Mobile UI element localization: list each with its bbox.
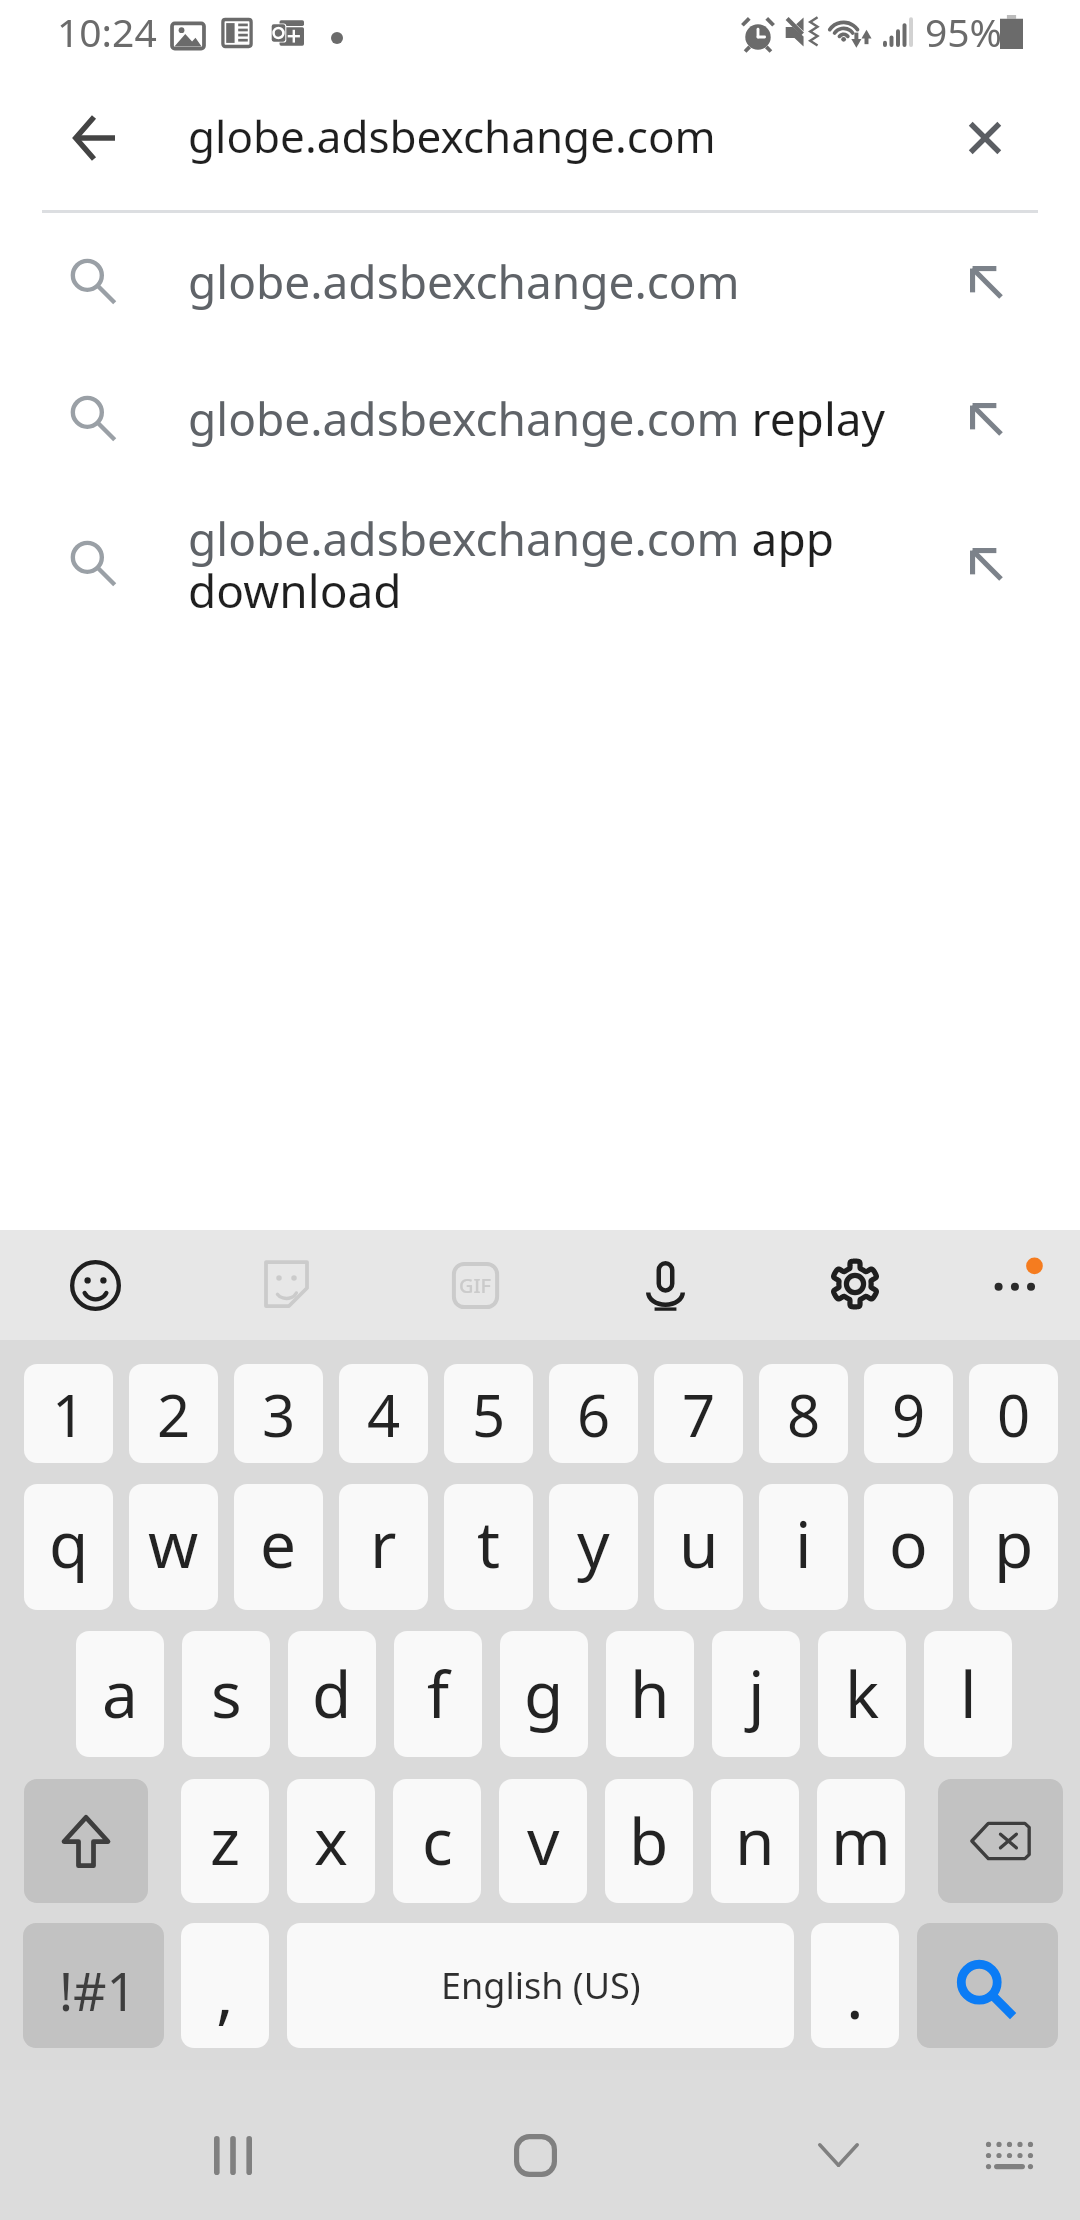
button[interactable]: r: [339, 1484, 428, 1610]
button[interactable]: Home: [480, 2090, 590, 2220]
button[interactable]: p: [969, 1484, 1058, 1610]
button[interactable]: 6: [549, 1364, 638, 1463]
staticText: d: [312, 1650, 352, 1737]
staticText: f: [427, 1650, 450, 1737]
button[interactable]: v: [499, 1779, 587, 1903]
button[interactable]: t: [444, 1484, 533, 1610]
button[interactable]: c: [393, 1779, 481, 1903]
staticText: 0: [997, 1375, 1031, 1454]
staticText: .: [846, 1948, 864, 2038]
button[interactable]: s: [182, 1631, 270, 1757]
staticText: y: [577, 1500, 610, 1587]
button[interactable]: 1: [24, 1364, 113, 1463]
button[interactable]: a: [76, 1631, 164, 1757]
button[interactable]: m: [817, 1779, 905, 1903]
button[interactable]: 2: [129, 1364, 218, 1463]
staticText: globe.adsbexchange.com: [188, 250, 914, 313]
button[interactable]: 5: [444, 1364, 533, 1463]
button[interactable]: Clear text: [938, 84, 1032, 192]
button[interactable]: Voice input: [621, 1241, 709, 1329]
button[interactable]: ,: [181, 1923, 269, 2048]
staticText: English (US): [441, 1961, 641, 2010]
staticText: c: [422, 1797, 453, 1884]
button[interactable]: u: [654, 1484, 743, 1610]
button[interactable]: n: [711, 1779, 799, 1903]
staticText: z: [210, 1797, 241, 1884]
button[interactable]: g: [500, 1631, 588, 1757]
staticText: b: [629, 1797, 669, 1884]
button[interactable]: 8: [759, 1364, 848, 1463]
staticText: l: [960, 1650, 977, 1737]
staticText: globe.adsbexchange.com app download: [188, 507, 914, 621]
staticText: q: [49, 1500, 89, 1587]
staticText: 7: [682, 1375, 716, 1454]
button[interactable]: 0: [969, 1364, 1058, 1463]
button[interactable]: f: [394, 1631, 482, 1757]
button[interactable]: 7: [654, 1364, 743, 1463]
button[interactable]: Stickers: [241, 1241, 329, 1329]
staticText: x: [314, 1797, 348, 1884]
staticText: !#1: [59, 1955, 137, 2026]
button[interactable]: k: [818, 1631, 906, 1757]
button[interactable]: w: [129, 1484, 218, 1610]
button[interactable]: More options: [970, 1241, 1058, 1329]
staticText: o: [889, 1500, 928, 1587]
button[interactable]: l: [924, 1631, 1012, 1757]
staticText: i: [795, 1500, 812, 1587]
button[interactable]: globe.adsbexchange.com replay: [0, 350, 1080, 487]
staticText: e: [260, 1500, 297, 1587]
button[interactable]: globe.adsbexchange.com app download: [0, 487, 1080, 640]
staticText: 9: [892, 1375, 926, 1454]
button[interactable]: !#1: [23, 1923, 164, 2048]
button[interactable]: x: [287, 1779, 375, 1903]
staticText: globe.adsbexchange.com replay: [188, 387, 914, 450]
staticText: k: [845, 1650, 880, 1737]
button[interactable]: z: [181, 1779, 269, 1903]
button[interactable]: 4: [339, 1364, 428, 1463]
button[interactable]: h: [606, 1631, 694, 1757]
staticText: t: [477, 1500, 501, 1587]
button[interactable]: b: [605, 1779, 693, 1903]
button[interactable]: y: [549, 1484, 638, 1610]
button[interactable]: .: [811, 1923, 899, 2048]
button[interactable]: Emoji: [51, 1241, 139, 1329]
staticText: s: [211, 1650, 242, 1737]
button[interactable]: Hide keyboard: [783, 2090, 893, 2220]
button[interactable]: o: [864, 1484, 953, 1610]
button[interactable]: Back: [47, 84, 141, 192]
button[interactable]: d: [288, 1631, 376, 1757]
button[interactable]: Recent apps: [178, 2090, 288, 2220]
staticText: p: [994, 1500, 1034, 1587]
button[interactable]: q: [24, 1484, 113, 1610]
staticText: GIF: [459, 1272, 492, 1299]
button[interactable]: Search: [917, 1923, 1058, 2048]
staticText: 2: [157, 1375, 191, 1454]
staticText: ,: [216, 1947, 234, 2037]
staticText: 6: [577, 1375, 611, 1454]
button[interactable]: 9: [864, 1364, 953, 1463]
button[interactable]: i: [759, 1484, 848, 1610]
staticText: 3: [262, 1375, 296, 1454]
staticText: w: [148, 1500, 199, 1587]
staticText: n: [735, 1797, 775, 1884]
button[interactable]: Shift: [24, 1779, 148, 1903]
staticText: 10:24: [57, 5, 157, 58]
button[interactable]: globe.adsbexchange.com: [0, 213, 1080, 350]
button[interactable]: e: [234, 1484, 323, 1610]
staticText: globe.adsbexchange.com: [188, 106, 716, 166]
staticText: m: [831, 1797, 891, 1884]
staticText: v: [527, 1797, 560, 1884]
staticText: h: [630, 1650, 670, 1737]
staticText: 4: [367, 1375, 401, 1454]
button[interactable]: 3: [234, 1364, 323, 1463]
button[interactable]: Backspace: [938, 1779, 1063, 1903]
button[interactable]: j: [712, 1631, 800, 1757]
button[interactable]: GIF: [431, 1241, 519, 1329]
staticText: 95%: [925, 5, 1003, 58]
staticText: 1: [52, 1375, 86, 1454]
staticText: g: [524, 1650, 564, 1737]
button[interactable]: English (US): [287, 1923, 794, 2048]
staticText: r: [370, 1500, 397, 1587]
button[interactable]: Settings: [811, 1241, 899, 1329]
button[interactable]: Switch keyboard: [954, 2090, 1064, 2220]
